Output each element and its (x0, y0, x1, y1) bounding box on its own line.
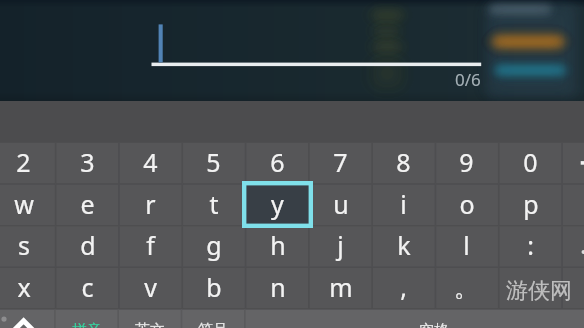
button[interactable]: 9 (435, 143, 498, 183)
button[interactable]: y (246, 185, 309, 225)
button[interactable]: t (182, 185, 245, 225)
button[interactable]: 7 (309, 143, 372, 183)
button[interactable]: 。 (435, 268, 498, 308)
staticText: b (206, 270, 222, 304)
staticText: 。 (454, 272, 479, 303)
staticText: 4 (143, 145, 158, 179)
button[interactable]: 0 (499, 143, 562, 183)
staticText: l (463, 228, 470, 262)
staticText: 9 (459, 145, 474, 179)
staticText: 符号 (198, 321, 228, 328)
staticText: c (81, 270, 94, 304)
staticText: 拼音 (72, 321, 102, 328)
button[interactable]: h (246, 226, 309, 266)
button[interactable]: 符号 (181, 310, 244, 328)
staticText: h (270, 228, 286, 262)
button[interactable]: 8 (372, 143, 435, 183)
button[interactable]: f (119, 226, 182, 266)
button[interactable]: p (499, 185, 562, 225)
staticText: 空格 (419, 321, 449, 328)
button[interactable]: m (309, 268, 372, 308)
staticText: e (80, 187, 95, 221)
staticText: t (209, 187, 219, 221)
staticText: w (14, 187, 34, 221)
staticText: 6 (270, 145, 285, 179)
button[interactable]: i (372, 185, 435, 225)
staticText: 5 (206, 145, 221, 179)
staticText: g (206, 228, 222, 262)
staticText: s (18, 228, 30, 262)
staticText: x (17, 270, 31, 304)
button[interactable]: u (309, 185, 372, 225)
staticText: y (271, 187, 284, 221)
staticText: 0 (523, 145, 538, 179)
staticText: p (523, 187, 539, 221)
staticText: , (400, 270, 407, 304)
button[interactable]: 4 (119, 143, 182, 183)
button[interactable]: 3 (56, 143, 119, 183)
button[interactable]: v (119, 268, 182, 308)
button[interactable]: j (309, 226, 372, 266)
button[interactable]: 空格 (244, 310, 499, 328)
button[interactable]: l (435, 226, 498, 266)
staticText: n (270, 270, 286, 304)
staticText: 2 (16, 145, 31, 179)
button[interactable]: c (56, 268, 119, 308)
staticText: v (144, 270, 157, 304)
staticText: y (271, 187, 284, 221)
button[interactable]: o (435, 185, 498, 225)
staticText: k (397, 228, 411, 262)
staticText: 3 (80, 145, 95, 179)
button[interactable]: Shift (0, 310, 55, 328)
button[interactable]: : (499, 226, 562, 266)
button[interactable]: 6 (246, 143, 309, 183)
button[interactable]: e (56, 185, 119, 225)
button[interactable]: 拼音 (55, 310, 118, 328)
staticText: 7 (333, 145, 348, 179)
staticText: u (333, 187, 349, 221)
staticText: i (400, 187, 407, 221)
button[interactable]: g (182, 226, 245, 266)
button[interactable]: x (0, 268, 55, 308)
staticText: r (145, 187, 156, 221)
button[interactable]: , (372, 268, 435, 308)
staticText: d (80, 228, 96, 262)
button[interactable]: w (0, 185, 55, 225)
button[interactable]: r (119, 185, 182, 225)
button[interactable]: b (182, 268, 245, 308)
staticText: 游侠网 (506, 277, 572, 305)
button[interactable]: 英文 (118, 310, 181, 328)
staticText: 英文 (135, 321, 165, 328)
button[interactable]: s (0, 226, 55, 266)
staticText: 8 (396, 145, 411, 179)
button[interactable]: k (372, 226, 435, 266)
staticText: : (527, 228, 534, 262)
staticText: j (337, 228, 344, 262)
button[interactable]: 5 (182, 143, 245, 183)
button[interactable]: y (242, 181, 313, 228)
staticText: o (459, 187, 475, 221)
staticText: f (146, 228, 155, 262)
staticText: m (329, 270, 353, 304)
button[interactable]: 2 (0, 143, 55, 183)
staticText: 0/6 (455, 68, 481, 91)
button[interactable]: d (56, 226, 119, 266)
button[interactable]: n (246, 268, 309, 308)
